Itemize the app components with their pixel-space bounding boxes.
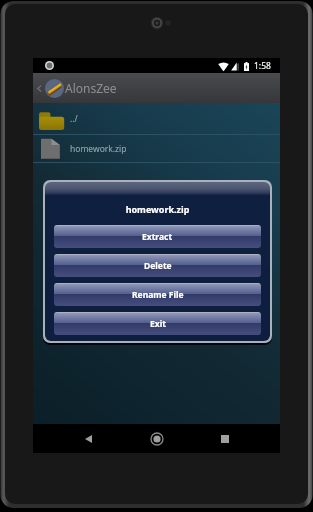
button[interactable]: Recents (202, 424, 247, 453)
staticText: 1:58 (254, 60, 271, 72)
staticText: homework.zip (45, 203, 270, 215)
button[interactable]: Rename File (54, 283, 261, 306)
button[interactable]: ../ (33, 103, 280, 135)
button[interactable]: Exit (54, 312, 261, 335)
button[interactable]: AlonsZee (33, 73, 280, 103)
button[interactable]: Home (134, 424, 179, 453)
staticText: AlonsZee (65, 80, 117, 96)
staticText: homework.zip (70, 143, 127, 155)
button[interactable]: Delete (54, 254, 261, 277)
button[interactable]: homework.zip (33, 135, 280, 163)
button[interactable]: Extract (54, 225, 261, 248)
staticText: Rename File (132, 289, 184, 301)
staticText: ../ (70, 113, 78, 125)
staticText: Delete (144, 260, 172, 272)
button[interactable]: Back (66, 424, 111, 453)
staticText: Extract (142, 231, 173, 243)
staticText: Exit (150, 318, 166, 330)
